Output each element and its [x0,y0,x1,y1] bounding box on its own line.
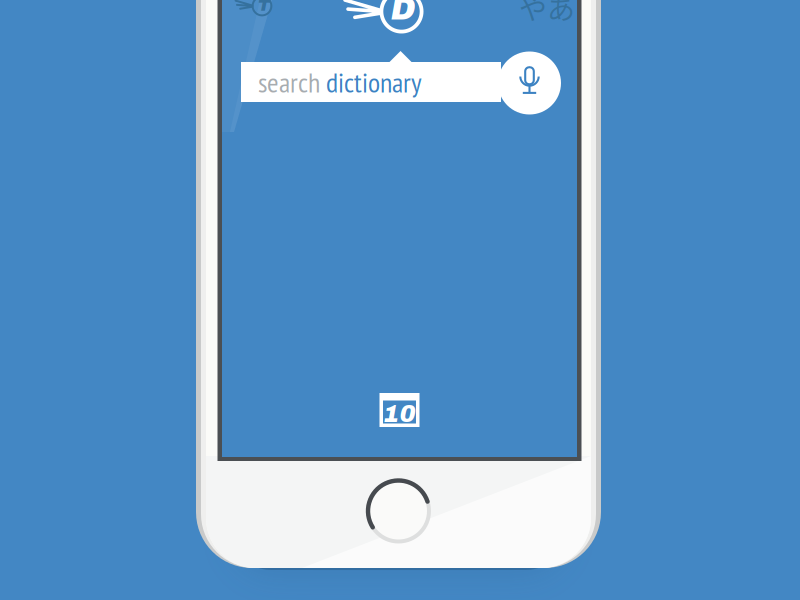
staticText: dictionary [326,64,422,100]
staticText: D [391,0,416,26]
button[interactable]: Home [366,479,430,543]
staticText: 10 [383,401,415,427]
button[interactable]: Thesaurus [202,0,322,46]
button[interactable]: Voice search [498,51,561,114]
button[interactable]: Translate [519,0,581,21]
staticText: search [258,64,326,100]
button[interactable]: Word of the day [379,393,419,427]
button[interactable]: Dictionary [341,0,461,51]
staticText: やあ [519,0,575,27]
staticText: T [257,0,270,14]
button[interactable]: search [241,62,501,102]
